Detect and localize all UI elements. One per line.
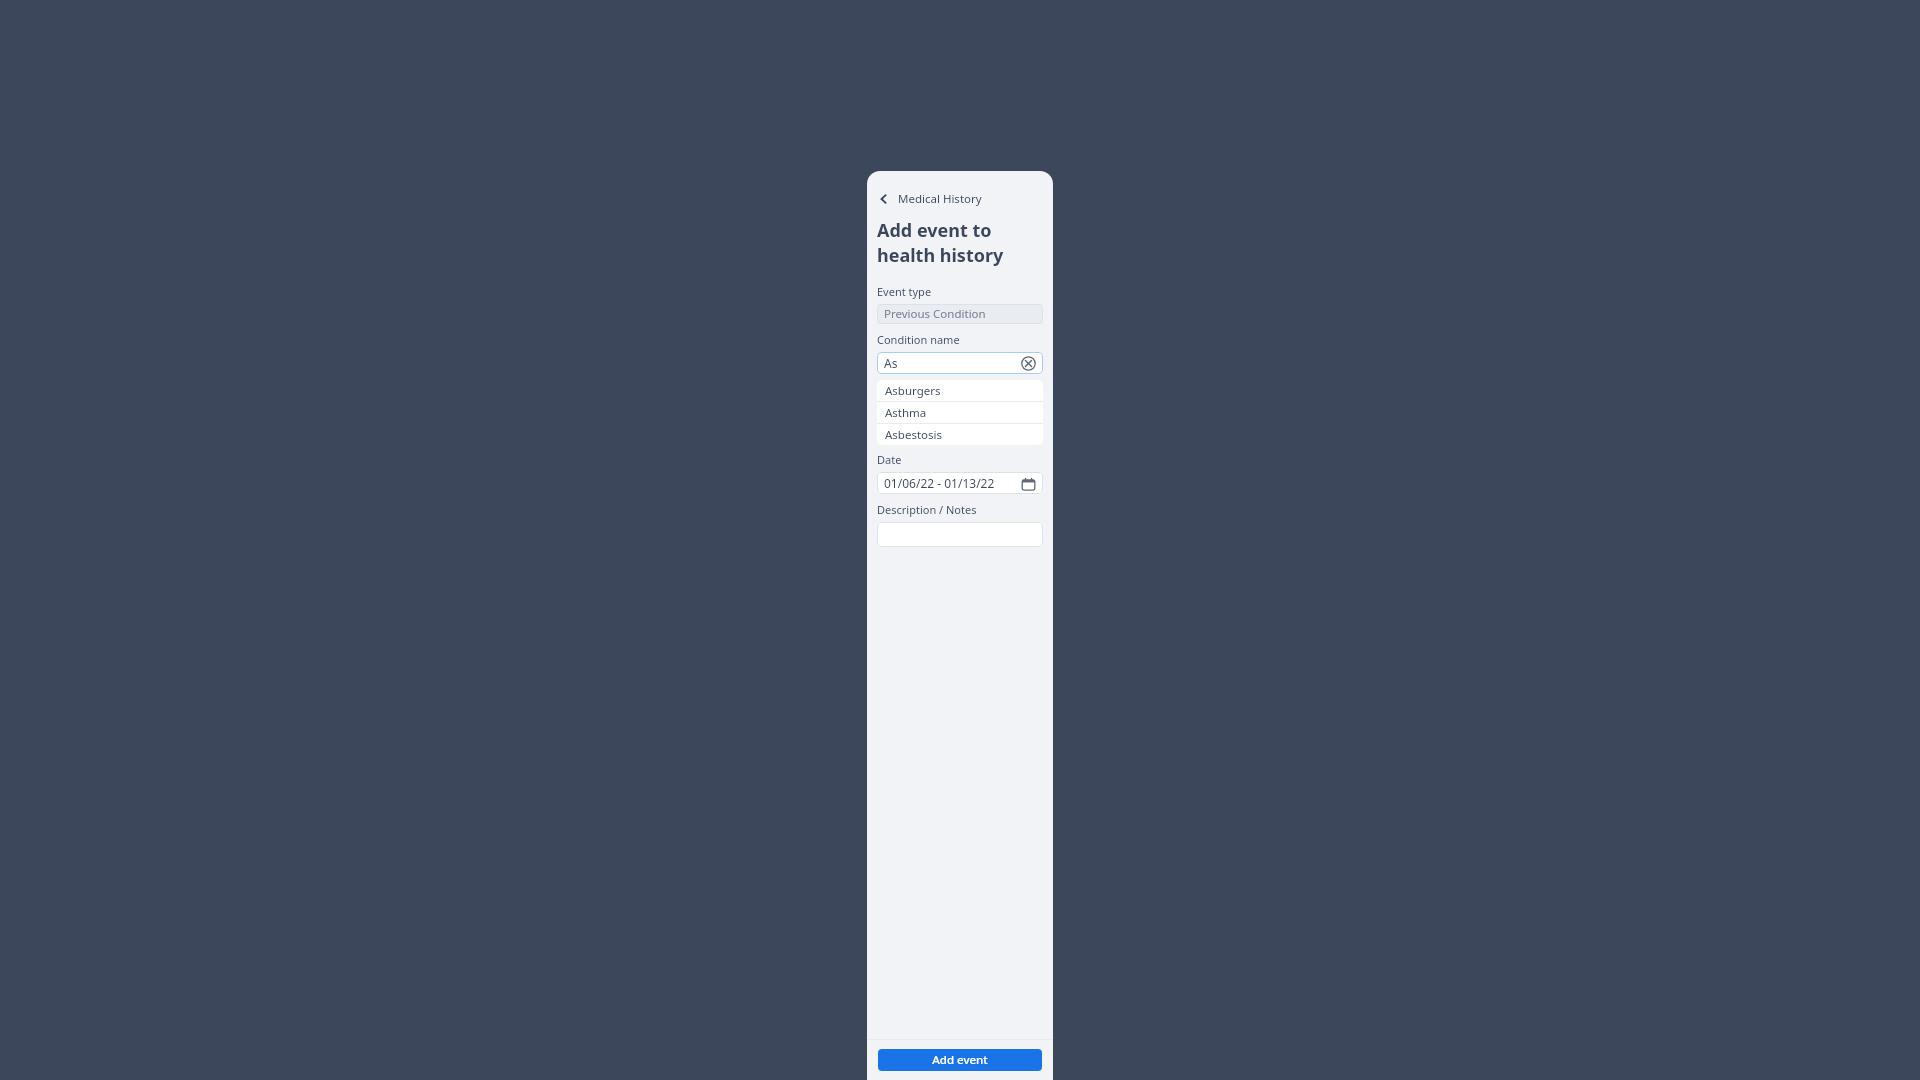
staticText: Asthma	[885, 405, 927, 421]
staticText: Condition name	[877, 332, 960, 347]
button[interactable]	[877, 522, 1043, 547]
button[interactable]: As	[877, 352, 1043, 374]
staticText: Add event to health history	[877, 218, 1053, 268]
staticText: Medical History	[898, 191, 982, 207]
button[interactable]: Asthma	[877, 402, 1043, 423]
button[interactable]: Asburgers	[877, 380, 1043, 401]
staticText: Asburgers	[885, 383, 941, 399]
button[interactable]: Add event	[878, 1049, 1042, 1071]
staticText: Add event	[932, 1052, 988, 1068]
button[interactable]: Pick date	[1021, 476, 1036, 491]
staticText: Previous Condition	[884, 306, 986, 322]
staticText: Event type	[877, 284, 932, 299]
staticText: Asbestosis	[885, 427, 943, 443]
staticText: As	[884, 355, 1021, 371]
button[interactable]: Clear	[1021, 356, 1036, 371]
button[interactable]: 01/06/22 - 01/13/22	[877, 472, 1043, 494]
staticText: 01/06/22 - 01/13/22	[884, 475, 1021, 491]
other: Back	[877, 192, 891, 206]
button[interactable]: Asbestosis	[877, 424, 1043, 445]
staticText: Date	[877, 452, 902, 467]
button[interactable]: Back	[875, 189, 984, 209]
staticText: Description / Notes	[877, 502, 977, 517]
button[interactable]: Previous Condition	[877, 304, 1043, 324]
